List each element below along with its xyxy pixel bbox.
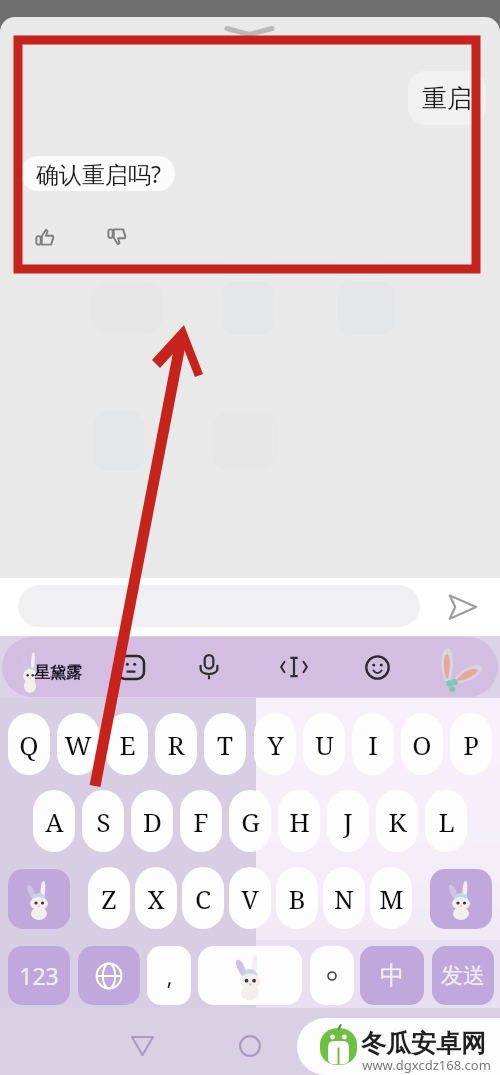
button[interactable]: Backspace: [430, 869, 492, 929]
button[interactable]: [18, 585, 420, 627]
staticText: ,: [166, 960, 173, 991]
button[interactable]: C: [182, 867, 224, 929]
button[interactable]: X: [135, 867, 177, 929]
staticText: 星黛露: [34, 663, 82, 683]
button[interactable]: S: [82, 790, 124, 852]
button[interactable]: Voice input: [181, 639, 237, 695]
button[interactable]: J: [327, 790, 369, 852]
staticText: G: [241, 804, 260, 839]
staticText: T: [217, 727, 233, 762]
button[interactable]: U: [303, 713, 345, 775]
staticText: I: [368, 727, 378, 762]
button[interactable]: Z: [88, 867, 130, 929]
button[interactable]: G: [229, 790, 271, 852]
button[interactable]: Thumbs down: [99, 218, 135, 254]
staticText: Q: [19, 727, 39, 762]
button[interactable]: R: [155, 713, 197, 775]
staticText: P: [463, 727, 479, 762]
button[interactable]: Emoji keyboard: [103, 639, 159, 695]
button[interactable]: H: [278, 790, 320, 852]
staticText: X: [147, 881, 165, 916]
staticText: E: [119, 727, 136, 762]
button[interactable]: I: [352, 713, 394, 775]
staticText: www.dgxcdz168.com: [362, 1056, 491, 1074]
button[interactable]: F: [180, 790, 222, 852]
button[interactable]: Keyboard settings: [422, 637, 492, 697]
button[interactable]: Theme: [2, 637, 84, 697]
button[interactable]: Y: [254, 713, 296, 775]
staticText: R: [167, 727, 185, 762]
button[interactable]: T: [204, 713, 246, 775]
button[interactable]: Cursor move: [266, 639, 322, 695]
staticText: 确认重启吗?: [36, 158, 161, 189]
button[interactable]: Sticker: [349, 639, 405, 695]
staticText: O: [412, 727, 432, 762]
staticText: 冬瓜安卓网: [361, 1028, 486, 1059]
button[interactable]: E: [106, 713, 148, 775]
button[interactable]: Thumbs up: [27, 219, 63, 255]
staticText: L: [438, 804, 455, 839]
staticText: F: [193, 804, 209, 839]
staticText: C: [195, 881, 211, 916]
staticText: S: [96, 804, 111, 839]
button[interactable]: L: [425, 790, 467, 852]
button[interactable]: ,: [147, 946, 191, 1005]
staticText: Y: [267, 727, 284, 762]
button[interactable]: A: [33, 790, 75, 852]
staticText: A: [45, 804, 64, 839]
button[interactable]: D: [131, 790, 173, 852]
button[interactable]: Back: [118, 1022, 166, 1070]
button[interactable]: Space: [198, 946, 302, 1005]
button[interactable]: 中: [360, 946, 424, 1005]
staticText: 重启: [422, 83, 472, 114]
button[interactable]: 123: [8, 946, 70, 1005]
staticText: J: [343, 804, 353, 839]
staticText: 123: [19, 960, 59, 991]
staticText: N: [334, 881, 354, 916]
button[interactable]: 确认重启吗?: [21, 156, 175, 191]
button[interactable]: P: [450, 713, 492, 775]
button[interactable]: Q: [8, 713, 50, 775]
button[interactable]: O: [401, 713, 443, 775]
button[interactable]: Shift: [8, 869, 70, 929]
button[interactable]: K: [376, 790, 418, 852]
staticText: 发送: [441, 962, 485, 990]
button[interactable]: M: [370, 867, 412, 929]
button[interactable]: V: [229, 867, 271, 929]
staticText: M: [379, 881, 404, 916]
button[interactable]: W: [57, 713, 99, 775]
button[interactable]: 发送: [432, 946, 494, 1005]
button[interactable]: B: [276, 867, 318, 929]
staticText: W: [64, 727, 92, 762]
button[interactable]: Period: [310, 946, 354, 1005]
button[interactable]: Send: [438, 586, 486, 628]
staticText: D: [143, 804, 162, 839]
staticText: K: [388, 804, 407, 839]
staticText: V: [241, 881, 259, 916]
staticText: H: [289, 804, 310, 839]
staticText: B: [288, 881, 306, 916]
button[interactable]: Language: [78, 946, 140, 1005]
staticText: U: [315, 727, 334, 762]
button[interactable]: N: [323, 867, 365, 929]
button[interactable]: 重启: [408, 71, 486, 125]
button[interactable]: Home: [226, 1022, 274, 1070]
staticText: Z: [101, 881, 117, 916]
staticText: 中: [380, 960, 405, 991]
